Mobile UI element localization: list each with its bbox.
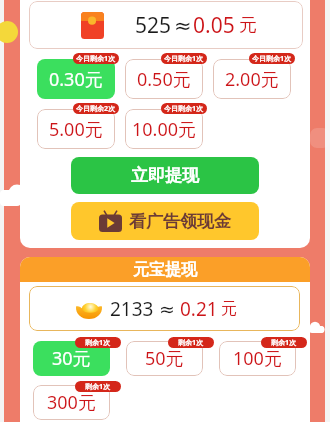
button[interactable]: 10.00元 bbox=[125, 109, 203, 149]
staticText: 今日剩余1次 bbox=[164, 54, 204, 64]
button[interactable]: 2133 bbox=[29, 286, 300, 331]
staticText: 剩余1次 bbox=[178, 338, 204, 348]
button[interactable]: 0.50元 bbox=[125, 59, 203, 99]
staticText: ≈ bbox=[159, 298, 175, 320]
staticText: 元宝提现 bbox=[133, 260, 197, 280]
staticText: 0.21 bbox=[180, 296, 218, 322]
staticText: 剩余1次 bbox=[271, 338, 297, 348]
staticText: 30元 bbox=[52, 346, 91, 371]
staticText: 0.50元 bbox=[137, 67, 191, 92]
staticText: 今日剩余1次 bbox=[252, 54, 292, 64]
button[interactable]: 525 bbox=[29, 1, 303, 49]
staticText: 今日剩余1次 bbox=[76, 54, 116, 64]
staticText: 300元 bbox=[47, 390, 96, 415]
staticText: 100元 bbox=[233, 346, 282, 371]
staticText: 剩余1次 bbox=[85, 338, 111, 348]
staticText: 0.05 bbox=[193, 11, 235, 40]
staticText: 今日剩余2次 bbox=[76, 104, 116, 114]
staticText: ≈ bbox=[174, 14, 192, 38]
staticText: 2.00元 bbox=[225, 67, 279, 92]
button[interactable]: 2.00元 bbox=[213, 59, 291, 99]
button[interactable]: 50元 bbox=[126, 341, 203, 376]
staticText: 看广告领现金 bbox=[129, 211, 231, 232]
staticText: 元 bbox=[239, 14, 257, 37]
staticText: 0.30元 bbox=[49, 67, 103, 92]
staticText: 5.00元 bbox=[49, 117, 103, 142]
staticText: 2133 bbox=[110, 296, 154, 322]
staticText: 今日剩余1次 bbox=[164, 104, 204, 114]
staticText: 剩余1次 bbox=[85, 382, 111, 392]
button[interactable]: 看广告领现金 bbox=[71, 202, 259, 240]
other: 看广告领现金 bbox=[99, 210, 122, 232]
button[interactable]: 5.00元 bbox=[37, 109, 115, 149]
staticText: 50元 bbox=[145, 346, 184, 371]
staticText: 525 bbox=[135, 11, 172, 40]
button[interactable]: 30元 bbox=[33, 341, 110, 376]
staticText: 10.00元 bbox=[132, 117, 197, 142]
staticText: 元 bbox=[221, 299, 237, 319]
button[interactable]: 立即提现 bbox=[71, 157, 259, 194]
button[interactable]: 0.30元 bbox=[37, 59, 115, 99]
staticText: 立即提现 bbox=[131, 165, 199, 186]
button[interactable]: 300元 bbox=[33, 385, 110, 420]
button[interactable]: 100元 bbox=[219, 341, 296, 376]
